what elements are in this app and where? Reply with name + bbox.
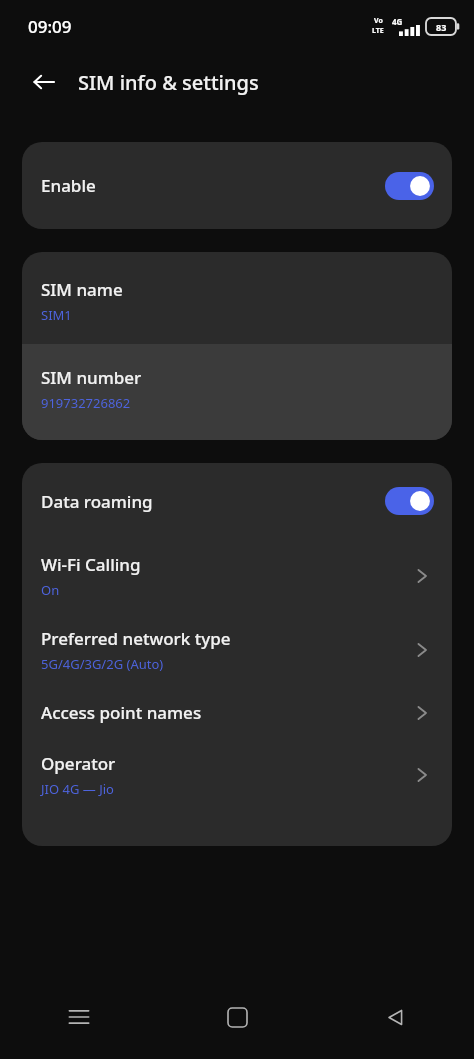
button[interactable]: Operator (22, 738, 452, 846)
button[interactable]: Home (158, 975, 316, 1059)
staticText: Enable (41, 174, 96, 197)
button[interactable]: Preferred network type (22, 613, 452, 687)
staticText: Operator (41, 752, 116, 775)
staticText: Preferred network type (41, 627, 231, 650)
staticText: Vo (374, 16, 383, 26)
button[interactable]: Back (22, 60, 66, 104)
staticText: 83 (436, 21, 447, 33)
button[interactable]: SIM number (22, 344, 452, 440)
button[interactable]: Enable (22, 142, 452, 229)
staticText: JIO 4G — Jio (41, 780, 114, 798)
staticText: 4G (392, 16, 403, 27)
staticText: Access point names (41, 701, 202, 724)
staticText: 09:09 (28, 15, 72, 38)
button[interactable]: SIM name (22, 252, 452, 344)
button[interactable]: Data roaming (22, 463, 452, 539)
staticText: SIM info & settings (78, 69, 259, 96)
staticText: 919732726862 (41, 394, 131, 412)
button[interactable]: Recent apps (0, 975, 158, 1059)
staticText: LTE (372, 26, 384, 36)
button[interactable]: Wi-Fi Calling (22, 539, 452, 613)
button[interactable]: Back (316, 975, 474, 1059)
staticText: Wi-Fi Calling (41, 553, 141, 576)
staticText: 5G/4G/3G/2G (Auto) (41, 655, 164, 673)
staticText: SIM1 (41, 306, 72, 324)
button[interactable]: Access point names (22, 687, 452, 738)
staticText: SIM name (41, 278, 123, 301)
staticText: On (41, 581, 60, 599)
staticText: SIM number (41, 366, 142, 389)
staticText: Data roaming (41, 490, 153, 513)
